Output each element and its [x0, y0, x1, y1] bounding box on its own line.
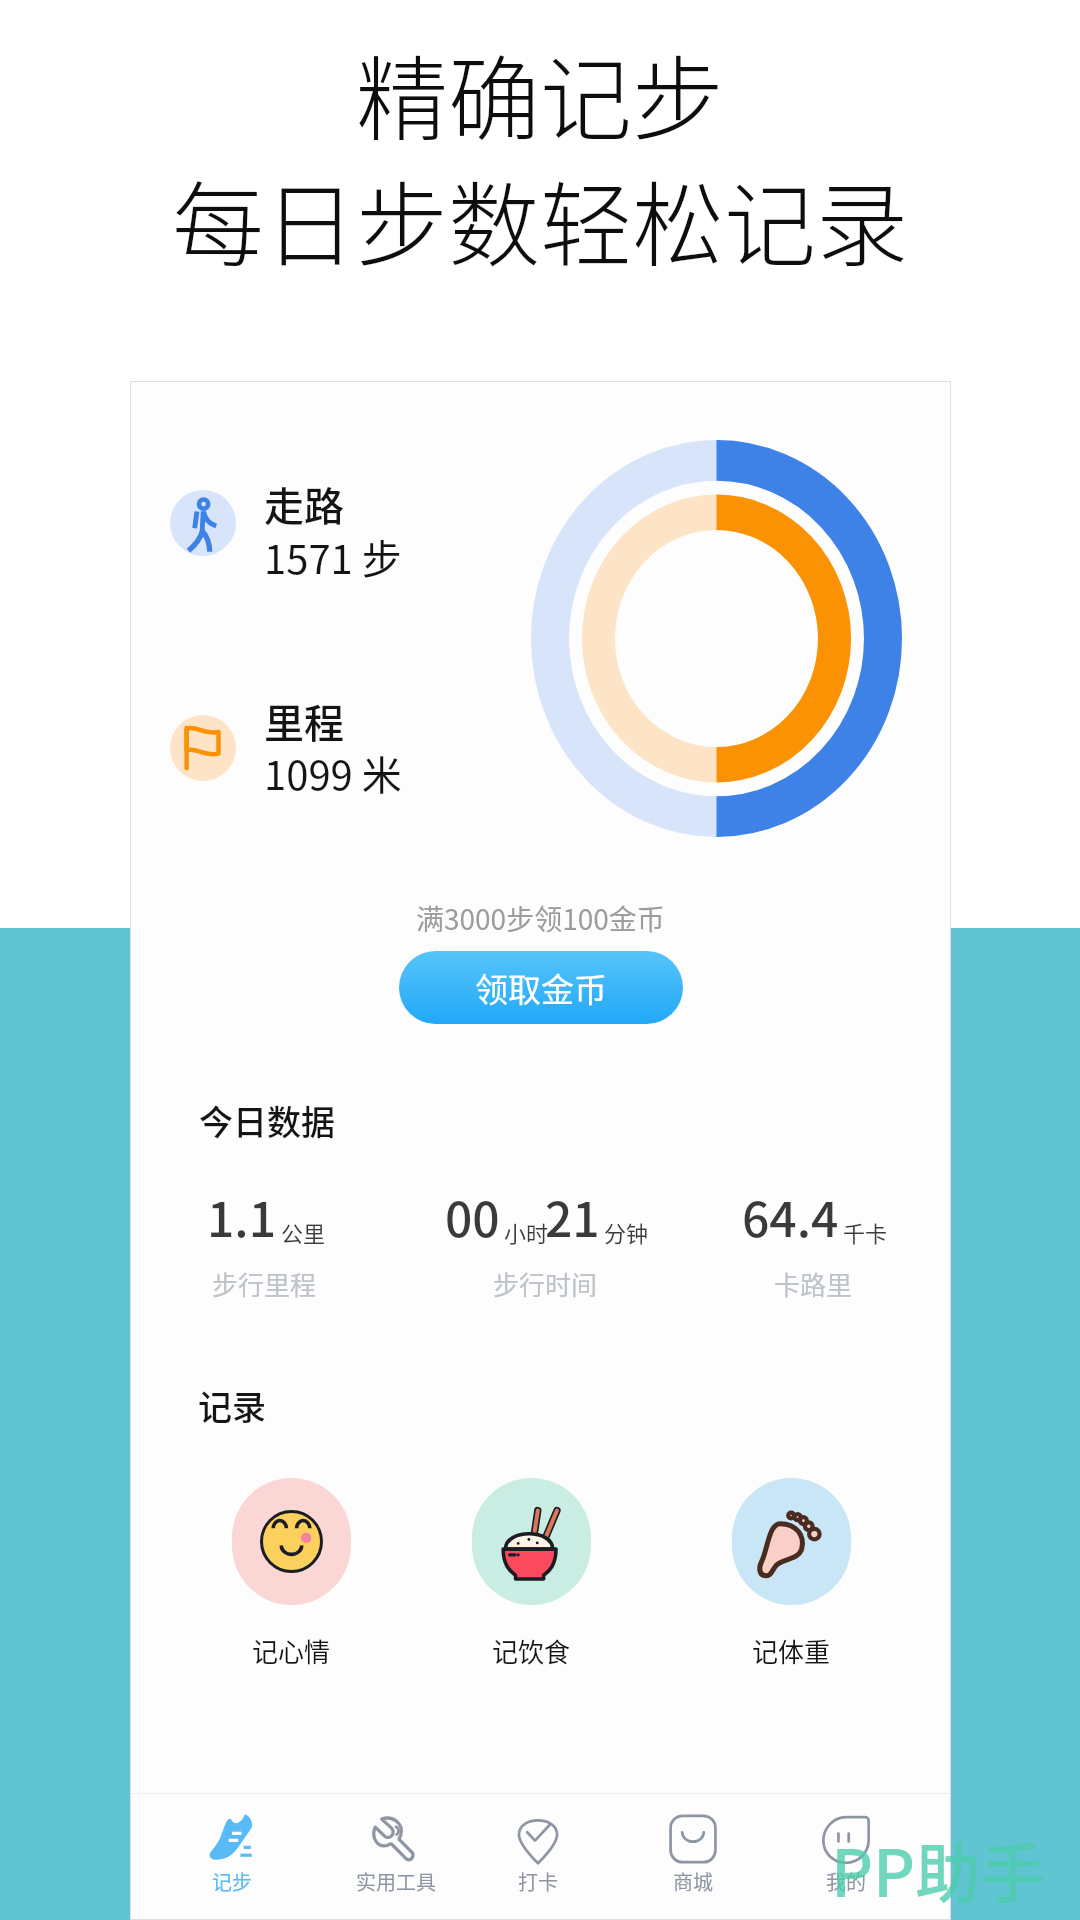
staticText: 记饮食	[431, 1632, 631, 1670]
staticText: 记体重	[691, 1632, 891, 1670]
button[interactable]: 领取金币	[399, 951, 683, 1024]
staticText: 千卡	[843, 1216, 888, 1248]
staticText: 公里	[281, 1216, 326, 1248]
button[interactable]: Shop	[623, 1800, 763, 1920]
staticText: 1571 步	[264, 528, 402, 586]
staticText: 领取金币	[475, 964, 607, 1012]
button[interactable]: Tools	[326, 1800, 466, 1920]
staticText: 64.4	[742, 1181, 839, 1251]
button[interactable]: 记体重	[691, 1478, 891, 1670]
button[interactable]: 记饮食	[431, 1478, 631, 1670]
staticText: 今日数据	[199, 1096, 335, 1145]
staticText: 00	[445, 1181, 500, 1251]
staticText: PP助手	[831, 1822, 1046, 1916]
staticText: 每日步数轻松记录	[172, 152, 909, 285]
staticText: 打卡	[468, 1867, 608, 1896]
staticText: 记录	[198, 1381, 266, 1430]
button[interactable]: Distance	[160, 697, 520, 833]
staticText: 里程	[264, 692, 344, 750]
staticText: 分钟	[604, 1216, 649, 1248]
staticText: 21	[545, 1181, 600, 1251]
button[interactable]: 记心情	[191, 1478, 391, 1670]
staticText: 步行里程	[212, 1265, 317, 1303]
button[interactable]: Profile	[776, 1800, 916, 1920]
staticText: 卡路里	[774, 1265, 853, 1303]
staticText: 满3000步领100金币	[416, 898, 665, 939]
staticText: 1099 米	[264, 744, 402, 802]
staticText: 我的	[776, 1867, 916, 1896]
staticText: 1.1	[207, 1181, 277, 1251]
button[interactable]: Check in	[468, 1800, 608, 1920]
button[interactable]: Walking	[160, 472, 520, 608]
staticText: 商城	[623, 1867, 763, 1896]
staticText: 小时	[504, 1216, 549, 1248]
staticText: 步行时间	[493, 1265, 598, 1303]
staticText: 走路	[264, 475, 344, 533]
staticText: 记步	[162, 1867, 302, 1896]
staticText: 精确记步	[356, 26, 725, 159]
button[interactable]: Steps	[162, 1800, 302, 1920]
staticText: 记心情	[191, 1632, 391, 1670]
staticText: 实用工具	[326, 1867, 466, 1896]
